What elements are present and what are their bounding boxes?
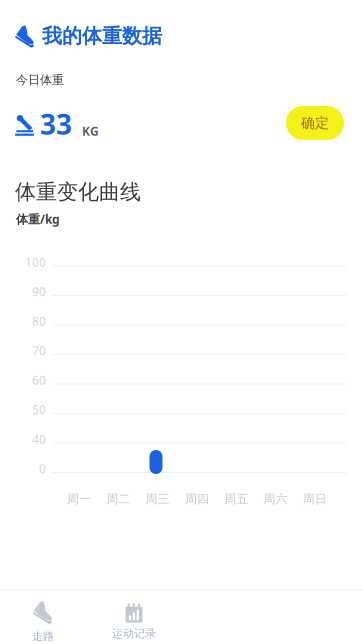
staticText: 确定: [301, 114, 329, 132]
staticText: 今日体重: [16, 72, 64, 87]
staticText: 40: [32, 431, 46, 447]
staticText: 运动记录: [112, 627, 156, 640]
staticText: 50: [32, 401, 46, 417]
staticText: 体重变化曲线: [15, 179, 141, 205]
button[interactable]: 走路: [1, 597, 85, 643]
staticText: 体重/kg: [16, 211, 60, 227]
staticText: 周二: [106, 491, 130, 506]
staticText: 周一: [67, 491, 91, 506]
staticText: 0: [39, 460, 46, 476]
staticText: 33: [40, 105, 72, 143]
staticText: 90: [32, 283, 46, 299]
staticText: KG: [82, 123, 99, 139]
button[interactable]: 确定: [286, 106, 344, 140]
button[interactable]: 运动记录: [92, 599, 176, 644]
staticText: 周三: [146, 491, 170, 506]
staticText: 周四: [185, 491, 209, 506]
staticText: 周五: [224, 491, 248, 506]
staticText: 60: [32, 372, 46, 388]
staticText: 走路: [32, 629, 54, 643]
staticText: 周六: [263, 491, 287, 506]
staticText: 100: [25, 254, 46, 270]
staticText: 我的体重数据: [42, 23, 162, 49]
staticText: 80: [32, 313, 46, 329]
staticText: 70: [32, 342, 46, 358]
staticText: 周日: [303, 491, 327, 506]
